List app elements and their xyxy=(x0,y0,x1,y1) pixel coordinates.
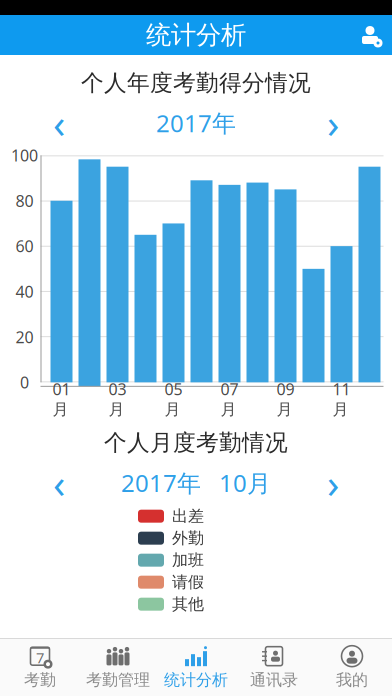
staticText: 其他 xyxy=(172,594,204,614)
button[interactable]: 下一个月 xyxy=(305,465,361,501)
button[interactable]: 我的 xyxy=(313,642,391,692)
staticText: 80 xyxy=(15,190,33,211)
staticText: 个人月度考勤情况 xyxy=(104,429,288,457)
staticText: ‹ xyxy=(53,96,65,149)
button[interactable]: 考勤管理 xyxy=(79,642,157,692)
button[interactable]: 上一年 xyxy=(31,105,87,141)
staticText: 05月 xyxy=(164,378,182,419)
staticText: › xyxy=(327,456,339,509)
staticText: 7 xyxy=(36,648,44,667)
staticText: 20 xyxy=(15,326,33,347)
staticText: 考勤 xyxy=(24,670,56,690)
staticText: 请假 xyxy=(172,572,204,592)
button[interactable]: 通讯录 xyxy=(235,642,313,692)
button[interactable]: 统计分析 xyxy=(157,642,235,692)
staticText: 我的 xyxy=(336,670,368,690)
staticText: › xyxy=(327,96,339,149)
staticText: 60 xyxy=(15,235,33,257)
staticText: 03月 xyxy=(108,378,126,419)
staticText: 加班 xyxy=(172,550,204,570)
staticText: 出差 xyxy=(172,506,204,526)
staticText: 外勤 xyxy=(172,528,204,548)
button[interactable]: 下一年 xyxy=(305,105,361,141)
staticText: 40 xyxy=(15,281,33,302)
button[interactable]: 上一个月 xyxy=(31,465,87,501)
staticText: 01月 xyxy=(52,378,70,419)
staticText: 09月 xyxy=(276,378,294,419)
staticText: 100 xyxy=(11,145,38,166)
staticText: 07月 xyxy=(220,378,238,419)
button[interactable]: 7 xyxy=(1,642,79,692)
staticText: 个人年度考勤得分情况 xyxy=(81,69,311,97)
staticText: 2017年 10月 xyxy=(121,467,271,499)
button[interactable]: 账号设置 xyxy=(348,15,392,55)
staticText: 统计分析 xyxy=(146,19,246,50)
staticText: 0 xyxy=(20,372,29,393)
staticText: ‹ xyxy=(53,456,65,509)
staticText: 2017年 xyxy=(156,107,236,139)
staticText: 考勤管理 xyxy=(86,670,150,690)
staticText: 11月 xyxy=(332,378,350,419)
staticText: 通讯录 xyxy=(250,670,298,690)
staticText: 统计分析 xyxy=(164,670,228,690)
